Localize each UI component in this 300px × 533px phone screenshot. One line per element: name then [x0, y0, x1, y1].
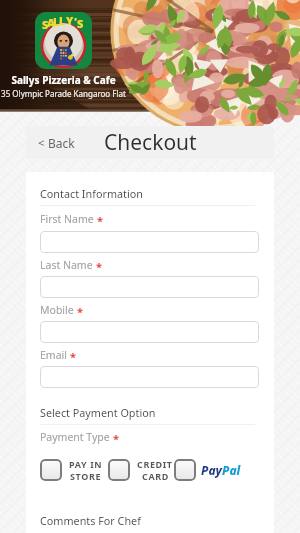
staticText: CARD: [142, 470, 169, 482]
staticText: Contact Information: [40, 186, 143, 201]
button[interactable]: [40, 276, 259, 298]
staticText: Checkout: [104, 128, 197, 157]
staticText: Last Name: [40, 258, 93, 272]
staticText: *: [113, 431, 119, 445]
button[interactable]: <: [34, 130, 79, 156]
staticText: *: [70, 349, 76, 363]
staticText: Sallys Pizzeria & Cafe: [11, 73, 116, 87]
staticText: Select Payment Option: [40, 405, 156, 420]
staticText: Pal: [222, 462, 241, 478]
button[interactable]: PayPal: [174, 459, 196, 481]
staticText: STORE: [70, 470, 102, 482]
staticText: *: [96, 259, 102, 273]
staticText: <: [38, 135, 45, 151]
staticText: Comments For Chef: [40, 513, 141, 528]
staticText: L: [53, 14, 60, 29]
staticText: Mobile: [40, 303, 74, 317]
button[interactable]: Pay in store: [40, 459, 62, 481]
staticText: *: [97, 213, 103, 227]
staticText: A: [47, 15, 55, 30]
button[interactable]: [40, 366, 259, 388]
staticText: 35 Olympic Parade Kangaroo Flat: [1, 88, 126, 99]
staticText: Y: [66, 13, 74, 28]
staticText: S: [77, 16, 84, 31]
staticText: *: [77, 304, 83, 318]
staticText: Email: [40, 348, 67, 362]
staticText: First Name: [40, 212, 94, 226]
staticText: Back: [48, 135, 75, 151]
button[interactable]: [40, 321, 259, 343]
staticText: PAY IN: [69, 458, 103, 470]
staticText: S: [42, 17, 49, 32]
staticText: L: [59, 13, 66, 28]
button[interactable]: Credit card: [108, 459, 130, 481]
button[interactable]: [40, 231, 259, 253]
staticText: ': [74, 14, 78, 29]
staticText: Payment Type: [40, 430, 110, 444]
staticText: Pay: [201, 462, 222, 478]
staticText: CREDIT: [137, 458, 173, 470]
